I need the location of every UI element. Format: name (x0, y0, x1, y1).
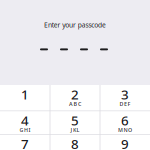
button[interactable]: 8 (50, 134, 100, 150)
button[interactable]: 9 (100, 134, 150, 150)
staticText: 8 (71, 135, 79, 150)
staticText: JKL (70, 126, 80, 133)
staticText: 9 (121, 135, 129, 150)
staticText: 1 (21, 85, 29, 103)
staticText: 5 (71, 111, 79, 129)
staticText: 3 (121, 85, 129, 103)
button[interactable]: 5 (50, 110, 100, 134)
staticText: DEF (119, 100, 131, 107)
staticText: ABC (69, 100, 81, 107)
staticText: MNO (118, 126, 132, 133)
staticText: Enter your passcode (44, 21, 106, 29)
staticText: 4 (21, 111, 29, 129)
button[interactable]: 4 (0, 110, 50, 134)
button[interactable]: 3 (100, 85, 150, 110)
staticText: 7 (21, 135, 29, 150)
button[interactable]: 6 (100, 110, 150, 134)
button[interactable]: 1 (0, 85, 50, 110)
staticText: 2 (71, 85, 79, 103)
button[interactable]: 7 (0, 134, 50, 150)
staticText: 6 (121, 111, 129, 129)
staticText: GHI (19, 126, 31, 133)
button[interactable]: 2 (50, 85, 100, 110)
